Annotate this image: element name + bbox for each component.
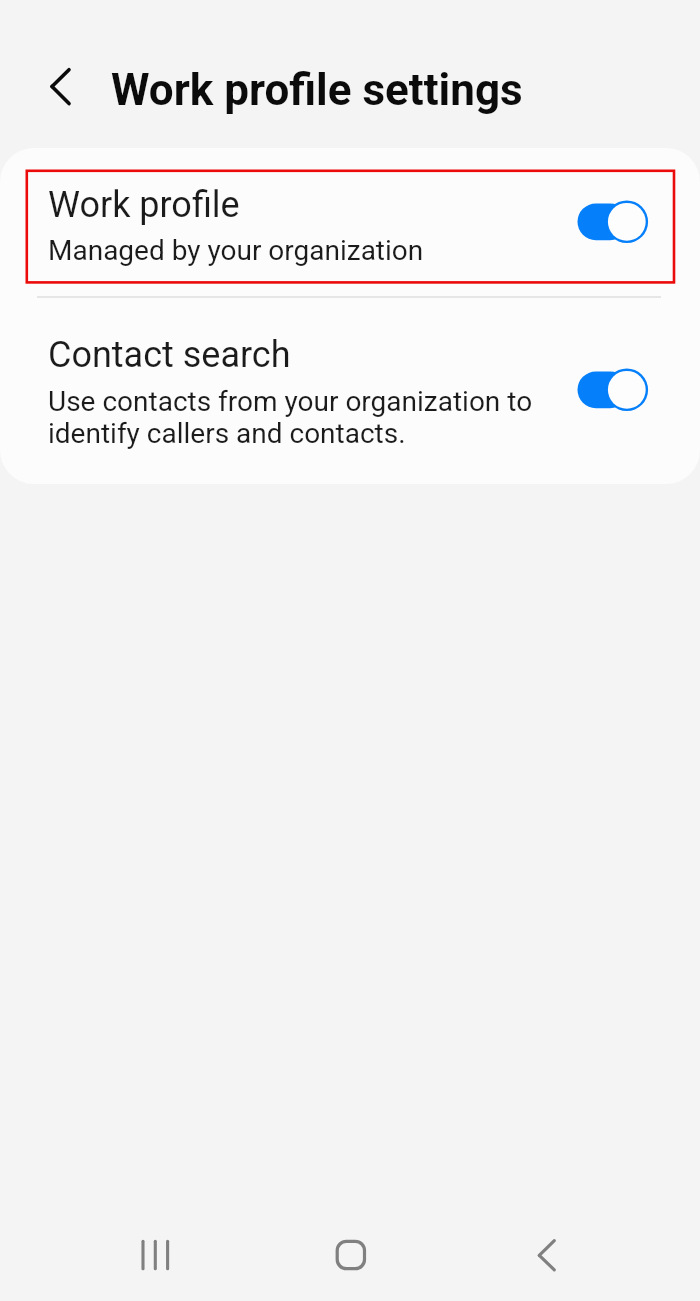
button[interactable]: Work profile xyxy=(0,148,700,297)
staticText: Contact search xyxy=(48,334,291,376)
button[interactable]: Navigate up xyxy=(34,64,80,110)
staticText: Use contacts from your organization to i… xyxy=(48,385,548,450)
button[interactable]: Home xyxy=(303,1207,399,1301)
staticText: Work profile xyxy=(48,184,240,226)
button[interactable]: Recent apps xyxy=(107,1207,203,1301)
button[interactable]: Back xyxy=(499,1207,595,1301)
button[interactable]: Switch, on xyxy=(575,198,655,246)
button[interactable]: Contact search xyxy=(0,297,700,484)
staticText: Work profile settings xyxy=(111,64,523,116)
button[interactable]: Switch, on xyxy=(575,366,655,414)
staticText: Managed by your organization xyxy=(48,234,424,267)
